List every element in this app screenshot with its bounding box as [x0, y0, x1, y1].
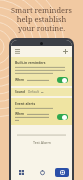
button[interactable]: Sound	[15, 90, 68, 94]
button[interactable]: Reminders	[52, 165, 72, 180]
button[interactable]: Toggle on	[57, 77, 68, 83]
button[interactable]: Dashboard	[11, 165, 32, 180]
staticText: Smart reminders help establish your rout…	[11, 5, 72, 34]
button[interactable]: Add	[62, 48, 69, 55]
button[interactable]: Built-in reminders	[11, 57, 72, 86]
staticText: Sound	[15, 90, 25, 94]
staticText: Event alerts	[15, 101, 36, 106]
button[interactable]: Notifications	[32, 165, 52, 180]
button[interactable]: Toggle on	[57, 114, 68, 120]
staticText: Default	[28, 90, 39, 94]
staticText: Built-in reminders	[15, 60, 46, 65]
button[interactable]: Test Alarm	[33, 140, 51, 145]
button[interactable]: Event alerts	[11, 98, 72, 125]
staticText: When	[15, 78, 25, 82]
staticText: When	[15, 112, 25, 116]
staticText: Test Alarm	[33, 140, 51, 145]
button[interactable]: Menu	[14, 48, 21, 55]
